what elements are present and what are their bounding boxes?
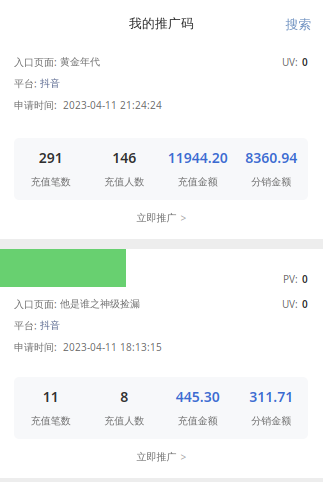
staticText: 0 <box>302 272 308 286</box>
staticText: 黄金年代 <box>60 56 100 68</box>
staticText: 申请时间: <box>14 98 63 112</box>
staticText: 他是谁之神级捡漏 <box>60 298 140 310</box>
staticText: 311.71 <box>249 387 293 406</box>
staticText: 2023-04-11 18:13:15 <box>63 340 162 354</box>
staticText: 充值笔数 <box>31 415 71 427</box>
staticText: 11944.20 <box>168 148 228 167</box>
button[interactable]: 立即推广 <box>0 439 323 478</box>
staticText: 分销金额 <box>251 415 291 427</box>
staticText: 2023-04-11 21:24:24 <box>63 98 162 112</box>
staticText: 抖音 <box>40 77 60 90</box>
staticText: 充值金额 <box>178 176 218 188</box>
staticText: 充值笔数 <box>31 176 71 188</box>
staticText: 分销金额 <box>251 176 291 188</box>
staticText: 11 <box>43 387 59 406</box>
staticText: UV: <box>282 297 298 311</box>
staticText: 平台: <box>14 77 40 90</box>
staticText: 入口页面: <box>14 55 60 69</box>
staticText: 入口页面: <box>14 297 60 311</box>
staticText: PV: <box>283 272 298 286</box>
staticText: UV: <box>282 55 298 69</box>
staticText: 充值金额 <box>178 415 218 427</box>
staticText: 0 <box>302 297 308 311</box>
staticText: 抖音 <box>40 319 60 332</box>
staticText: 8 <box>120 387 128 406</box>
staticText: 申请时间: <box>14 340 63 354</box>
staticText: 立即推广 <box>136 451 176 463</box>
staticText: 291 <box>39 148 63 167</box>
staticText: 445.30 <box>176 387 220 406</box>
staticText: 充值人数 <box>104 415 144 427</box>
staticText: > <box>180 211 186 225</box>
staticText: 0 <box>302 55 308 69</box>
staticText: 8360.94 <box>245 148 297 167</box>
staticText: 我的推广码 <box>129 15 194 31</box>
staticText: 146 <box>112 148 136 167</box>
button[interactable]: 立即推广 <box>0 200 323 239</box>
staticText: 平台: <box>14 319 40 332</box>
staticText: > <box>180 450 186 464</box>
staticText: 充值人数 <box>104 176 144 188</box>
button[interactable]: 搜索 <box>274 0 323 45</box>
staticText: 搜索 <box>285 16 311 32</box>
staticText: 立即推广 <box>136 212 176 224</box>
